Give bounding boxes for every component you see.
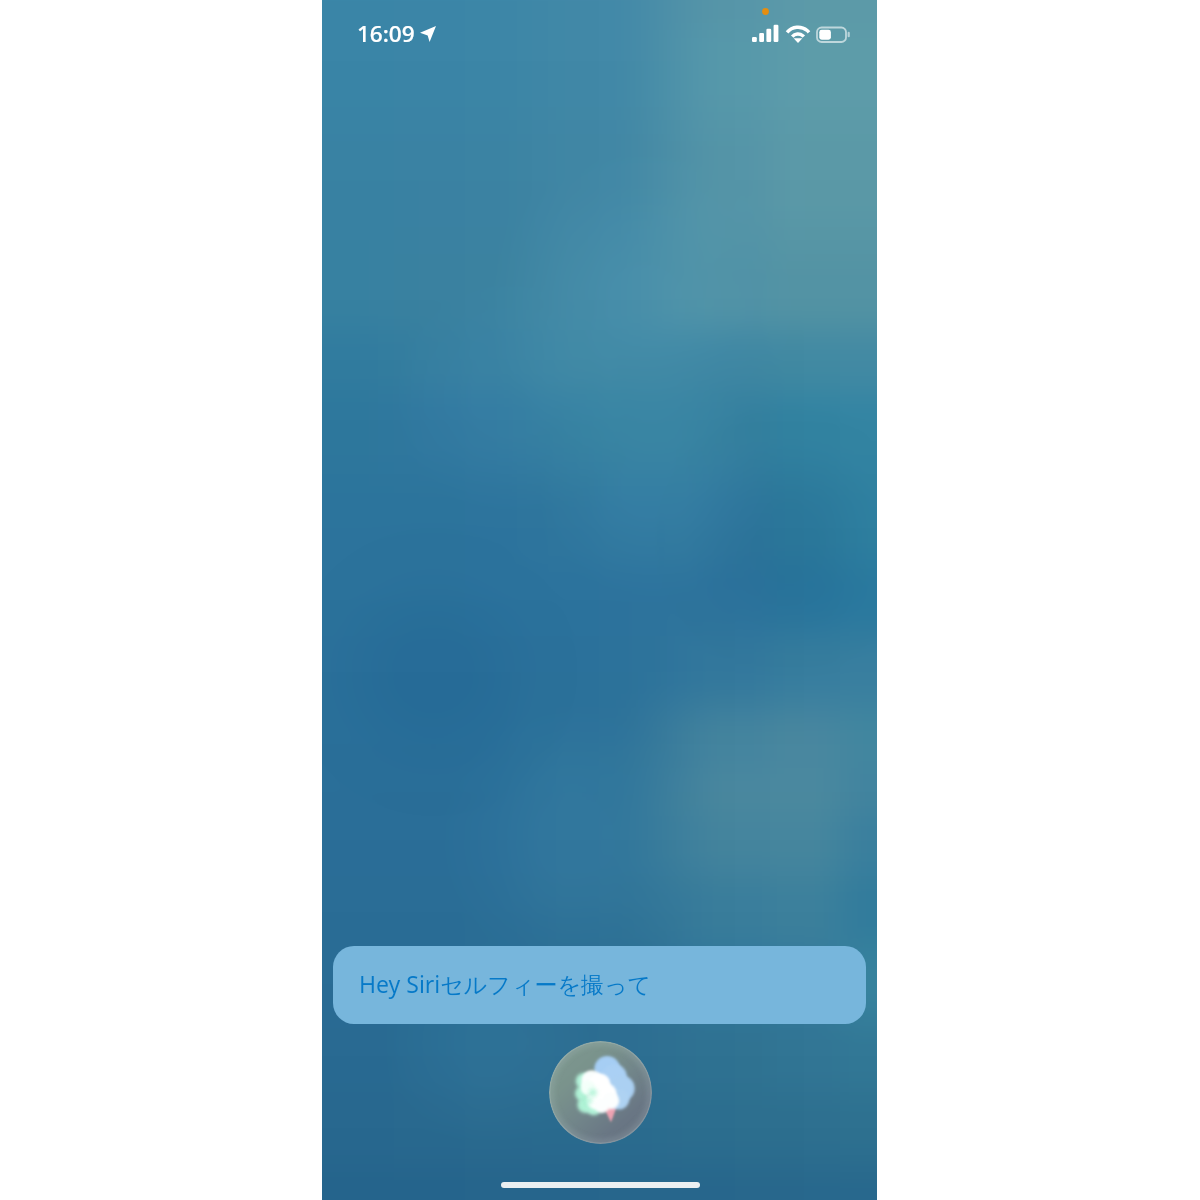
button[interactable]: Hey Siriセルフィーを撮って: [333, 946, 866, 1024]
button[interactable]: Siri: [549, 1041, 652, 1144]
staticText: Hey Siriセルフィーを撮って: [359, 968, 652, 999]
staticText: 16:09: [357, 18, 415, 49]
